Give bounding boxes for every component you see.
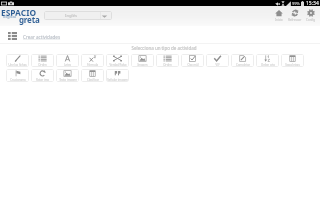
button[interactable]: Refrescar xyxy=(287,9,303,24)
staticText: Une las fichas xyxy=(8,63,27,67)
staticText: greta xyxy=(19,14,40,25)
button[interactable] xyxy=(8,32,17,40)
staticText: ESPACIO xyxy=(1,7,37,18)
button[interactable]: Verdad/Falso xyxy=(106,54,129,67)
staticText: Orden crip xyxy=(261,63,275,67)
button[interactable]: Completar xyxy=(231,54,254,67)
button[interactable]: Texto imagen xyxy=(56,69,79,82)
staticText: Fórmula xyxy=(87,63,98,67)
staticText: Señalar imagen xyxy=(107,78,128,82)
staticText: Config xyxy=(306,18,316,22)
staticText: Letra xyxy=(64,63,71,67)
button[interactable]: Señalar imagen xyxy=(106,69,129,82)
button[interactable]: Inglés xyxy=(44,11,112,20)
button[interactable]: Une las fichas xyxy=(6,54,29,67)
staticText: Inglés xyxy=(65,13,78,19)
button[interactable]: V/F xyxy=(206,54,229,67)
staticText: Imagen xyxy=(137,63,148,67)
button[interactable]: Opc múl xyxy=(181,54,204,67)
staticText: digital xyxy=(3,14,17,20)
button[interactable]: Orden xyxy=(156,54,179,67)
staticText: Inicio xyxy=(275,18,283,22)
button[interactable]: Clasificar xyxy=(81,69,104,82)
staticText: Crear actividades xyxy=(23,34,61,40)
button[interactable]: Fórmula xyxy=(81,54,104,67)
staticText: Opc múl xyxy=(187,63,199,67)
staticText: V/F xyxy=(215,63,220,67)
button[interactable]: Config xyxy=(303,9,319,24)
staticText: Crucigrama xyxy=(10,78,26,82)
staticText: Verdad/Falso xyxy=(109,63,127,67)
staticText: Sopa letras xyxy=(285,63,300,67)
button[interactable]: Rotar img xyxy=(31,69,54,82)
staticText: Completar xyxy=(236,63,250,67)
staticText: Orden xyxy=(38,63,47,67)
button[interactable]: Imagen xyxy=(131,54,154,67)
staticText: Clasificar xyxy=(87,78,99,82)
button[interactable]: Orden xyxy=(31,54,54,67)
staticText: 15:34 xyxy=(306,0,319,7)
staticText: Selecciona un tipo de actividad xyxy=(4,45,320,51)
button[interactable]: Sopa letras xyxy=(281,54,304,67)
button[interactable]: Letra xyxy=(56,54,79,67)
staticText: Refrescar xyxy=(288,18,302,22)
staticText: Orden xyxy=(163,63,172,67)
button[interactable]: Crear actividades xyxy=(23,34,61,40)
staticText: Texto imagen xyxy=(59,78,77,82)
button[interactable]: Inicio xyxy=(271,9,287,24)
staticText: Rotar img xyxy=(36,78,49,82)
button[interactable]: Orden crip xyxy=(256,54,279,67)
button[interactable]: Crucigrama xyxy=(6,69,29,82)
staticText: 99% xyxy=(292,1,300,6)
